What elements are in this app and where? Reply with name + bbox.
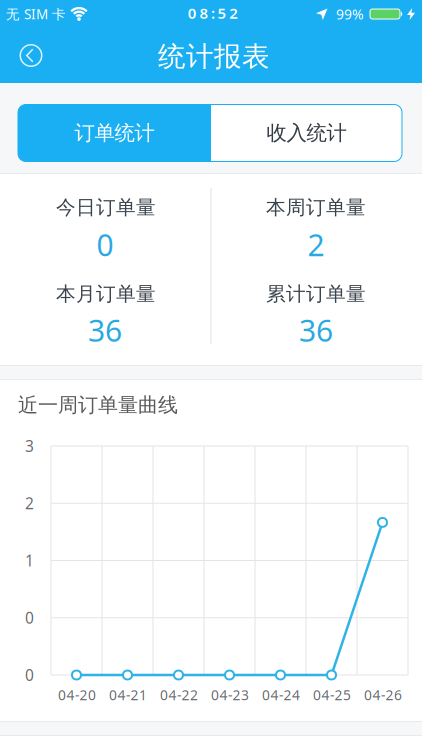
button[interactable]: [11, 33, 51, 77]
staticText: 订单统计: [74, 120, 154, 146]
staticText: 累计订单量: [266, 282, 366, 306]
button[interactable]: 订单统计: [18, 104, 211, 161]
staticText: 本月订单量: [56, 282, 156, 306]
staticText: 04-21: [109, 686, 147, 704]
staticText: 36: [88, 310, 122, 350]
staticText: 近一周订单量曲线: [18, 392, 178, 418]
staticText: 今日订单量: [56, 195, 156, 220]
staticText: 04-22: [160, 686, 198, 704]
staticText: 08:52: [188, 3, 238, 23]
staticText: 04-26: [364, 686, 402, 704]
staticText: 04-20: [58, 686, 96, 704]
staticText: 2: [25, 493, 34, 514]
button[interactable]: 收入统计: [211, 104, 402, 161]
staticText: 统计报表: [158, 39, 270, 74]
staticText: 04-23: [211, 686, 249, 704]
staticText: 本周订单量: [266, 195, 366, 220]
staticText: 04-24: [262, 686, 300, 704]
staticText: 0: [25, 664, 34, 685]
staticText: 1: [25, 550, 34, 571]
staticText: 36: [299, 310, 333, 350]
staticText: 3: [25, 435, 34, 456]
staticText: 99%: [336, 4, 364, 24]
staticText: 0: [25, 607, 34, 628]
staticText: 0: [96, 224, 113, 265]
staticText: 收入统计: [266, 120, 346, 146]
staticText: 无 SIM 卡: [6, 5, 66, 23]
staticText: 2: [307, 224, 324, 265]
staticText: 04-25: [313, 686, 351, 704]
